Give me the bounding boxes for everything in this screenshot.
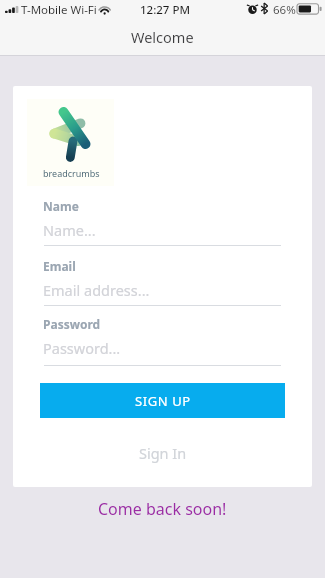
- staticText: Welcome: [131, 27, 194, 47]
- staticText: T-Mobile Wi-Fi: [21, 2, 97, 18]
- staticText: Password...: [43, 338, 121, 358]
- staticText: Password: [43, 316, 101, 332]
- staticText: breadcrumbs: [43, 167, 100, 179]
- button[interactable]: SIGN UP: [40, 383, 285, 418]
- staticText: Sign In: [139, 443, 187, 463]
- staticText: Email address...: [43, 280, 150, 300]
- staticText: 66%: [273, 2, 296, 18]
- staticText: Name...: [43, 220, 96, 240]
- staticText: Email: [43, 258, 76, 274]
- staticText: 12:27 PM: [140, 2, 191, 18]
- button[interactable]: Sign In: [119, 437, 207, 469]
- staticText: SIGN UP: [135, 392, 191, 410]
- staticText: Name: [43, 198, 79, 214]
- staticText: Come back soon!: [98, 498, 227, 520]
